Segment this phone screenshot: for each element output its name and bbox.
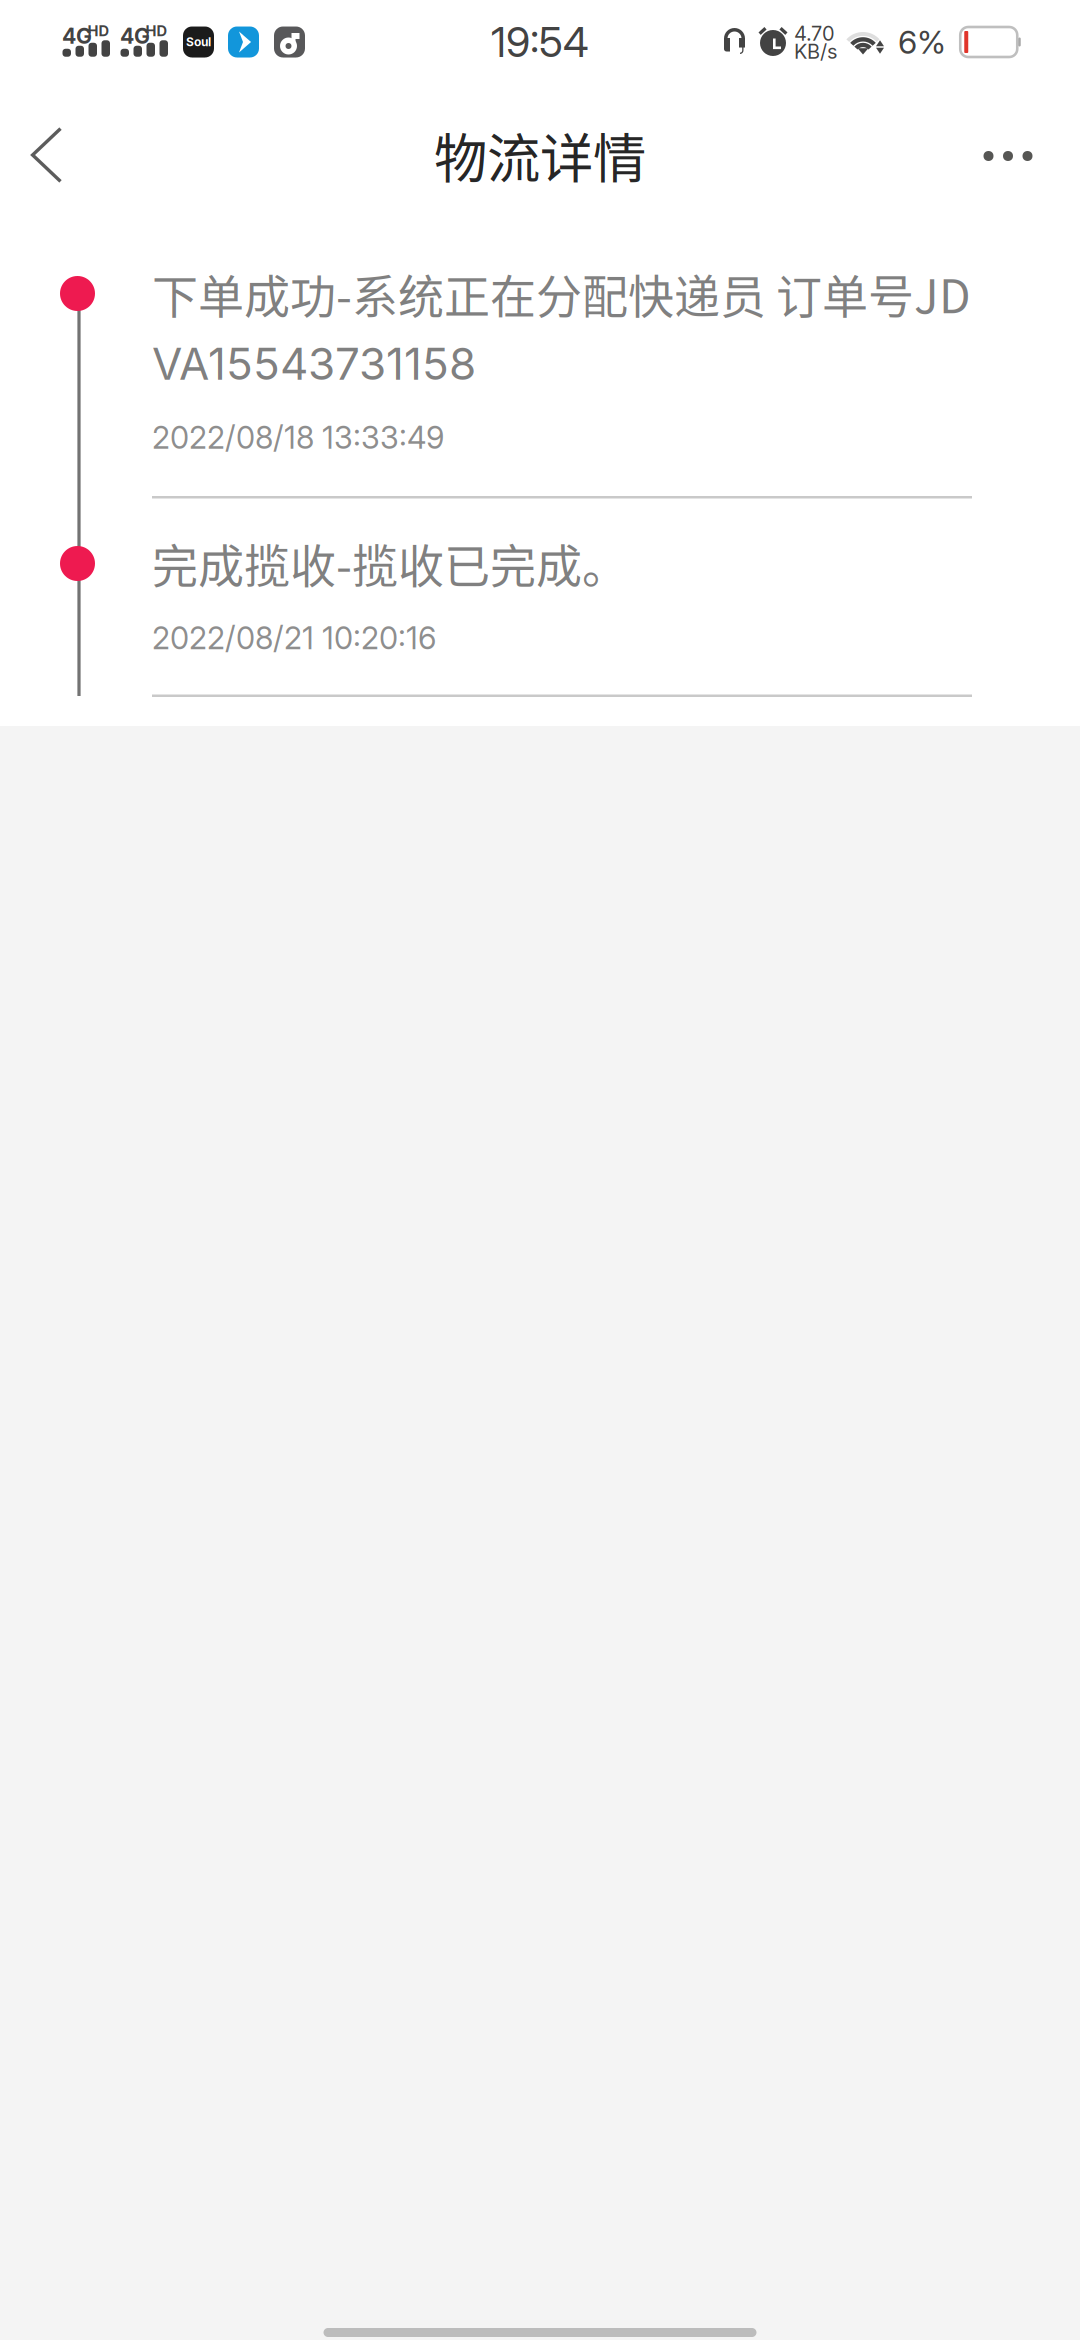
staticText: 4.70 bbox=[794, 21, 835, 46]
staticText: 4G bbox=[120, 23, 150, 49]
button[interactable]: Back bbox=[0, 100, 92, 204]
staticText: 6% bbox=[898, 23, 946, 61]
staticText: HD bbox=[145, 22, 167, 40]
staticText: VA15543731158 bbox=[152, 337, 476, 390]
staticText: 物流详情 bbox=[434, 116, 646, 194]
staticText: HD bbox=[87, 22, 109, 40]
staticText: 下单成功-系统正在分配快递员 订单号JD bbox=[152, 260, 971, 327]
staticText: Soul bbox=[186, 35, 211, 49]
staticText: KB/s bbox=[794, 39, 837, 64]
staticText: 2022/08/18 13:33:49 bbox=[152, 419, 444, 456]
button[interactable]: More bbox=[943, 107, 1080, 197]
staticText: 2022/08/21 10:20:16 bbox=[152, 619, 436, 657]
staticText: 完成揽收-揽收已完成。 bbox=[152, 529, 628, 596]
staticText: 19:54 bbox=[491, 17, 589, 67]
staticText: 4G bbox=[62, 23, 92, 49]
